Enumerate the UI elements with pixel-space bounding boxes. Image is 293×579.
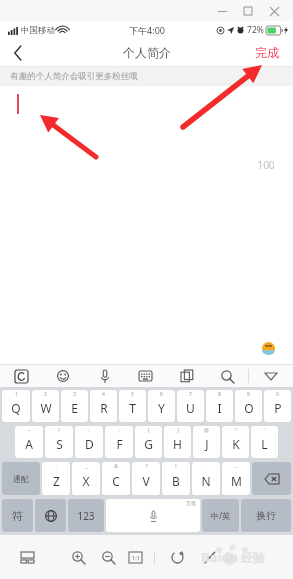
button[interactable]: 、 — [192, 462, 220, 495]
button[interactable]: Back — [0, 39, 36, 66]
button[interactable]: Keyboard — [125, 365, 166, 387]
staticText: W — [40, 400, 52, 416]
button[interactable]: 符 — [2, 499, 33, 532]
button[interactable]: Sogou input — [0, 365, 42, 387]
button[interactable]: - — [42, 462, 70, 495]
button[interactable]: Clipboard — [166, 365, 207, 387]
staticText: 完成 — [255, 45, 279, 60]
staticText: 72% — [247, 24, 264, 36]
button[interactable]: Search — [207, 365, 248, 387]
staticText: C — [112, 473, 120, 489]
button[interactable]: ! — [162, 462, 190, 495]
staticText: N — [201, 473, 211, 489]
staticText: - — [55, 463, 57, 470]
staticText: B — [172, 473, 180, 489]
button[interactable]: : — [75, 426, 103, 458]
staticText: A — [25, 436, 33, 452]
staticText: _ — [85, 463, 88, 470]
staticText: L — [261, 436, 268, 452]
button[interactable]: & — [102, 462, 130, 495]
button[interactable]: / — [45, 426, 73, 458]
staticText: 下午4:00 — [129, 24, 165, 36]
staticText: 1:1 — [132, 554, 140, 561]
button[interactable]: 完成 — [251, 42, 283, 63]
staticText: 9 — [247, 391, 250, 398]
button[interactable]: Hide keyboard — [249, 365, 293, 387]
staticText: I — [217, 400, 222, 416]
staticText: T — [129, 400, 136, 416]
button[interactable]: Maximize — [235, 1, 261, 21]
staticText: 1 — [15, 391, 18, 398]
staticText: S — [56, 436, 63, 452]
button[interactable]: Close — [261, 1, 287, 21]
button[interactable]: … — [222, 462, 250, 495]
button[interactable]: ? — [132, 462, 160, 495]
button[interactable]: 通配 — [2, 462, 40, 495]
staticText: J — [205, 436, 209, 452]
button[interactable]: Zoom out — [96, 545, 120, 569]
button[interactable]: ' — [251, 426, 278, 458]
button[interactable]: Switch language — [35, 499, 66, 532]
staticText: G — [144, 436, 153, 452]
button[interactable]: ( — [135, 426, 162, 458]
button[interactable]: 8 — [206, 390, 233, 422]
button[interactable]: Rotate — [165, 545, 189, 569]
button[interactable]: 2 — [32, 390, 59, 422]
button[interactable]: Actual size — [124, 546, 146, 568]
staticText: V — [142, 473, 150, 489]
button[interactable]: 4 — [90, 390, 117, 422]
button[interactable]: ; — [105, 426, 133, 458]
staticText: 100 — [257, 158, 275, 172]
button[interactable]: 6 — [148, 390, 175, 422]
button[interactable]: Backspace — [252, 462, 291, 495]
button[interactable]: ~ — [15, 426, 43, 458]
button[interactable]: 7 — [177, 390, 204, 422]
staticText: 6 — [160, 391, 163, 398]
staticText: ; — [118, 427, 120, 434]
button[interactable]: 123 — [68, 499, 104, 532]
staticText: 经验 — [241, 550, 265, 565]
staticText: 个人简介 — [123, 45, 171, 60]
staticText: ) — [177, 427, 179, 434]
staticText: / — [58, 427, 60, 434]
staticText: 符 — [12, 509, 23, 523]
staticText: 123 — [77, 509, 95, 523]
button[interactable]: Draw — [197, 545, 221, 569]
staticText: D — [85, 436, 94, 452]
button[interactable]: 3 — [61, 390, 88, 422]
staticText: X — [82, 473, 90, 489]
staticText: " — [234, 427, 237, 434]
button[interactable]: Zoom in — [66, 545, 90, 569]
staticText: 3 — [73, 391, 76, 398]
button[interactable]: _ — [72, 462, 100, 495]
button[interactable]: Space — [106, 499, 200, 532]
staticText: ! — [175, 463, 177, 470]
button[interactable]: 5 — [119, 390, 146, 422]
staticText: Baidu — [201, 548, 238, 566]
button[interactable]: Voice input — [84, 365, 125, 387]
staticText: Z — [53, 473, 60, 489]
button[interactable]: 100 — [0, 86, 293, 364]
button[interactable]: ) — [164, 426, 191, 458]
staticText: 有趣的个人简介会吸引更多粉丝哦 — [10, 71, 138, 82]
staticText: M — [231, 473, 242, 489]
button[interactable]: @ — [193, 426, 220, 458]
button[interactable]: 中/英 — [202, 499, 239, 532]
button[interactable]: Emoji — [42, 365, 84, 387]
staticText: H — [173, 436, 182, 452]
button[interactable]: 换行 — [241, 499, 291, 532]
staticText: Q — [11, 400, 21, 416]
staticText: 五笔 — [186, 500, 196, 506]
staticText: ( — [148, 427, 150, 434]
button[interactable]: " — [222, 426, 249, 458]
staticText: P — [274, 400, 282, 416]
staticText: : — [88, 427, 90, 434]
button[interactable]: Layout — [14, 544, 40, 570]
button[interactable]: 0 — [264, 390, 291, 422]
button[interactable]: Minimize — [209, 1, 235, 21]
button[interactable]: 9 — [235, 390, 262, 422]
staticText: 通配 — [13, 474, 29, 484]
staticText: R — [100, 400, 108, 416]
staticText: ? — [145, 463, 148, 470]
button[interactable]: 1 — [2, 390, 30, 422]
